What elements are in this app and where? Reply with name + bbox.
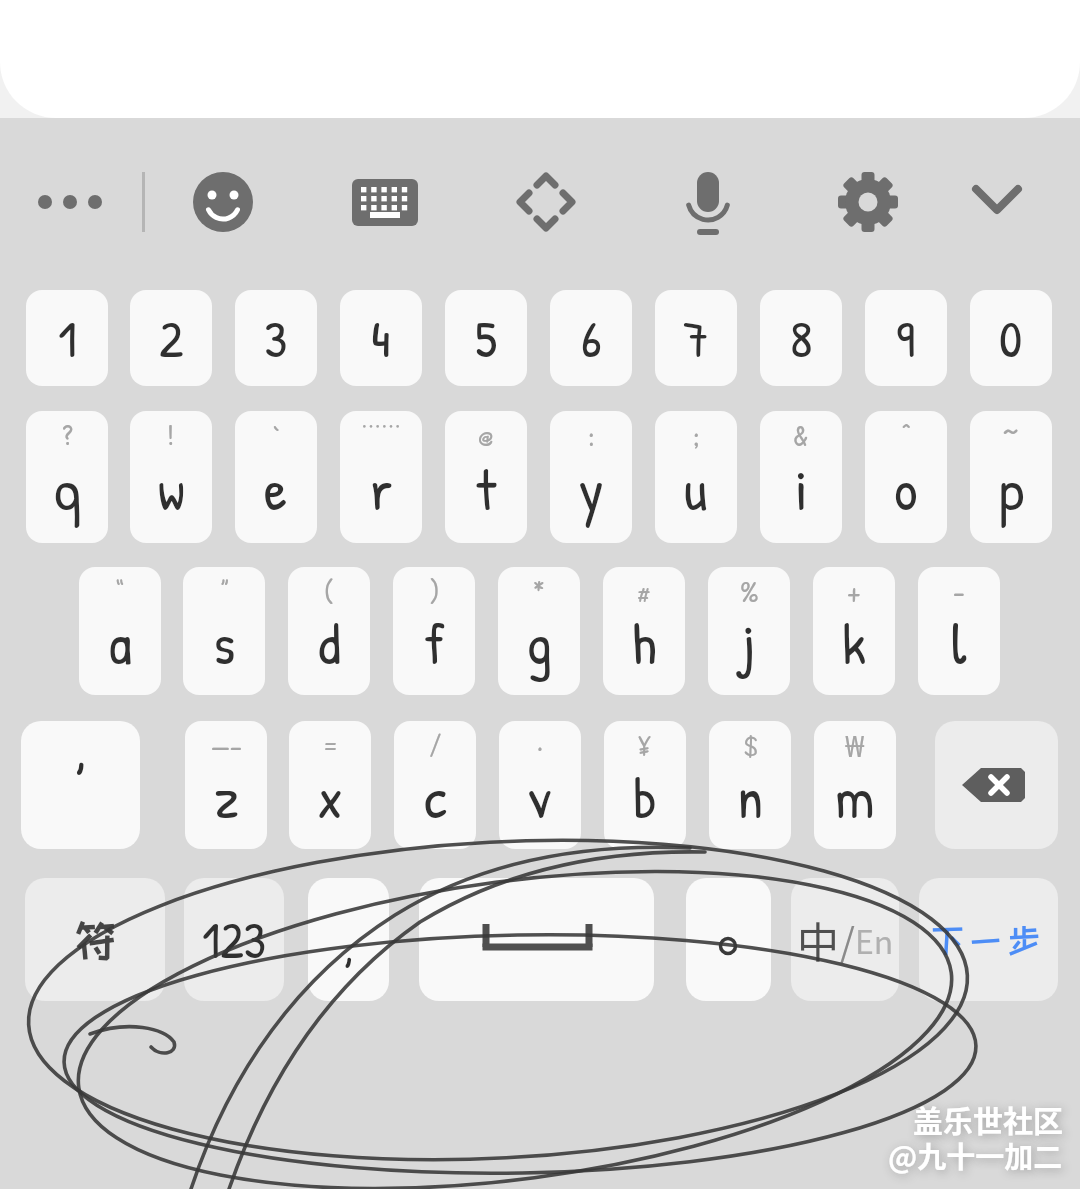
button[interactable]: ~ [970,411,1052,543]
button[interactable]: 2 [130,290,212,386]
button[interactable] [966,176,1028,224]
button[interactable]: + [813,567,895,695]
staticText: @九十一加二 [888,1134,1063,1176]
staticText: v [528,758,552,837]
staticText: * [533,572,545,611]
staticText: + [847,572,861,611]
button[interactable] [514,170,578,234]
button[interactable]: ? [26,411,108,543]
button[interactable]: ^ [865,411,947,543]
staticText: i [795,450,808,529]
staticText: ” [220,572,229,611]
staticText: ` [273,416,280,455]
staticText: · [537,726,543,765]
staticText: e [264,450,288,529]
button[interactable]: 符 [25,878,165,1001]
button[interactable]: —– [185,721,267,849]
button[interactable]: 中 [791,878,899,1001]
staticText: f [424,604,445,683]
button[interactable]: 6 [550,290,632,386]
button[interactable]: = [289,721,371,849]
staticText: 下一步 [931,922,1046,958]
staticText: 2 [159,303,184,373]
button[interactable]: : [550,411,632,543]
button[interactable]: & [760,411,842,543]
button[interactable]: / [394,721,476,849]
staticText: k [842,604,867,683]
staticText: 9 [896,303,916,373]
button[interactable]: ( [288,567,370,695]
staticText: = [322,726,339,765]
staticText: 123 [202,906,266,974]
staticText: w [158,450,185,529]
staticText: ( [324,572,334,611]
button[interactable]: , [21,721,140,849]
staticText: 1 [58,303,77,373]
staticText: u [684,450,708,529]
staticText: c [424,758,447,837]
button[interactable] [352,179,418,226]
button[interactable]: ` [235,411,317,543]
button[interactable]: 5 [445,290,527,386]
button[interactable]: 0 [970,290,1052,386]
staticText: a [109,604,132,683]
button[interactable] [686,878,771,1001]
button[interactable]: …… [340,411,422,543]
staticText: # [637,572,651,611]
staticText: ? [62,416,73,455]
button[interactable] [676,168,740,236]
staticText: $ [743,726,758,765]
staticText: j [742,604,756,683]
button[interactable]: ” [183,567,265,695]
button[interactable]: 下一步 [919,878,1058,1001]
staticText: m [835,758,875,837]
button[interactable]: ₩ [814,721,896,849]
staticText: ) [429,572,440,611]
staticText: 6 [581,303,602,373]
staticText: - [953,572,965,611]
button[interactable]: # [603,567,685,695]
button[interactable]: , [308,878,389,1001]
staticText: o [894,450,918,529]
staticText: En [855,917,894,963]
button[interactable]: $ [709,721,791,849]
staticText: ^ [901,416,912,455]
staticText: l [951,604,967,683]
staticText: @ [478,416,494,455]
button[interactable]: “ [79,567,161,695]
button[interactable] [25,170,115,234]
staticText: : [588,416,595,455]
button[interactable] [419,878,654,1001]
button[interactable]: @ [445,411,527,543]
button[interactable] [190,169,256,235]
button[interactable]: 9 [865,290,947,386]
button[interactable]: * [498,567,580,695]
staticText: z [214,758,239,837]
staticText: & [793,416,809,455]
button[interactable] [838,172,898,232]
button[interactable]: 8 [760,290,842,386]
button[interactable] [935,721,1058,849]
staticText: ¥ [638,726,652,765]
button[interactable]: % [708,567,790,695]
staticText: 4 [371,303,391,373]
button[interactable]: 123 [184,878,284,1001]
button[interactable]: 7 [655,290,737,386]
staticText: 0 [999,303,1023,373]
staticText: s [213,604,236,683]
button[interactable]: - [918,567,1000,695]
staticText: , [74,721,87,789]
staticText: 8 [790,303,813,373]
button[interactable]: 4 [340,290,422,386]
button[interactable]: · [499,721,581,849]
button[interactable]: ; [655,411,737,543]
button[interactable]: ! [130,411,212,543]
button[interactable]: ¥ [604,721,686,849]
button[interactable]: 3 [235,290,317,386]
staticText: r [370,450,393,529]
staticText: ₩ [845,726,865,765]
staticText: h [632,604,657,683]
staticText: 符 [73,916,118,964]
button[interactable]: ) [393,567,475,695]
button[interactable]: 1 [26,290,108,386]
